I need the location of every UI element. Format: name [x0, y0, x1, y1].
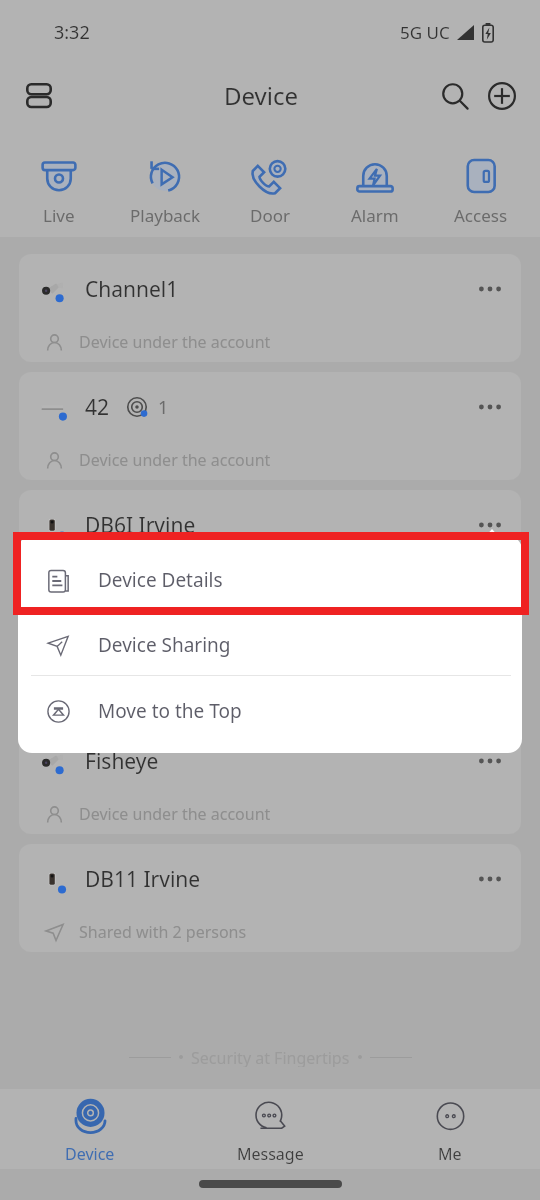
staticText: Device: [65, 1143, 115, 1165]
staticText: Playback: [130, 204, 201, 227]
button[interactable]: Door: [224, 134, 316, 227]
staticText: Device under the account: [79, 449, 271, 471]
button[interactable]: More options: [467, 266, 513, 312]
button[interactable]: More options: [467, 738, 513, 784]
button[interactable]: 42: [19, 372, 521, 480]
button[interactable]: Live: [13, 134, 105, 227]
button[interactable]: Device: [0, 1089, 180, 1169]
button[interactable]: Message: [180, 1089, 360, 1169]
staticText: Channel1: [85, 275, 179, 304]
button[interactable]: Me: [360, 1089, 540, 1169]
staticText: Device: [224, 79, 299, 112]
button[interactable]: Fisheye: [19, 726, 521, 834]
staticText: Device under the account: [79, 803, 271, 825]
staticText: Access: [454, 204, 508, 227]
staticText: Channel2: [85, 629, 179, 658]
button[interactable]: DB6I Irvine: [19, 490, 521, 598]
staticText: 5G UC: [400, 21, 450, 44]
button[interactable]: DB11 Irvine: [19, 844, 521, 952]
staticText: Device under the account: [79, 331, 271, 353]
staticText: Device under the account: [79, 567, 271, 589]
button[interactable]: More options: [467, 502, 513, 548]
button[interactable]: Access: [435, 134, 527, 227]
staticText: 3:32: [54, 20, 90, 45]
staticText: Door: [250, 204, 291, 227]
button[interactable]: Device Details: [18, 548, 522, 612]
staticText: Move to the Top: [98, 698, 242, 724]
staticText: DB11 Irvine: [85, 865, 201, 894]
button[interactable]: Switch layout: [15, 71, 63, 119]
staticText: Message: [237, 1143, 304, 1165]
staticText: Fisheye: [85, 747, 159, 776]
button[interactable]: Search: [431, 72, 478, 119]
staticText: 1: [158, 395, 169, 420]
staticText: Security at Fingertips: [191, 1047, 350, 1067]
button[interactable]: Playback: [119, 134, 211, 227]
staticText: Device under the account: [79, 685, 271, 707]
staticText: Device Sharing: [98, 632, 231, 658]
staticText: Device Details: [98, 567, 223, 593]
staticText: 42: [85, 393, 110, 422]
button[interactable]: Channel2: [19, 608, 521, 716]
button[interactable]: More options: [467, 384, 513, 430]
button[interactable]: More options: [467, 856, 513, 902]
staticText: Shared with 2 persons: [79, 921, 247, 943]
staticText: Live: [43, 204, 75, 227]
staticText: Me: [438, 1143, 462, 1165]
button[interactable]: Device Sharing: [18, 613, 522, 677]
staticText: Alarm: [351, 204, 399, 227]
button[interactable]: Add device: [478, 72, 525, 119]
button[interactable]: Alarm: [329, 134, 421, 227]
button[interactable]: Move to the Top: [18, 679, 522, 743]
staticText: DB6I Irvine: [85, 511, 196, 540]
button[interactable]: Channel1: [19, 254, 521, 362]
